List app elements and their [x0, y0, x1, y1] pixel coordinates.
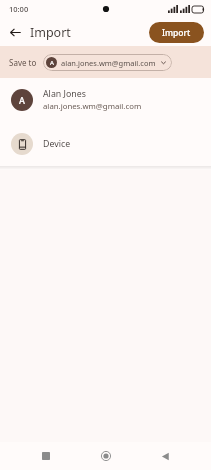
staticText: Alan Jones — [43, 88, 86, 100]
staticText: A — [19, 94, 25, 106]
staticText: alan.jones.wm@gmail.com — [43, 101, 142, 112]
staticText: Import — [162, 27, 191, 39]
staticText: A — [50, 59, 54, 67]
staticText: Device — [43, 138, 71, 150]
button[interactable]: Back — [4, 21, 26, 43]
button[interactable]: Device — [0, 122, 211, 166]
staticText: alan.jones.wm@gmail.com — [61, 58, 156, 68]
button[interactable]: A — [0, 78, 211, 122]
staticText: Save to — [9, 57, 37, 68]
staticText: 10:00 — [9, 4, 29, 14]
button[interactable]: Recent apps — [33, 443, 59, 469]
button[interactable]: Back — [152, 443, 178, 469]
staticText: Import contacts — [30, 24, 89, 41]
button[interactable]: Home — [93, 443, 119, 469]
button[interactable]: Import — [149, 22, 204, 43]
button[interactable]: A — [43, 54, 172, 71]
